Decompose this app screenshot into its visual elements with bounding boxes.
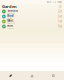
- staticText: Sun 12 May: [46, 0, 61, 4]
- staticText: Basil: [7, 14, 14, 17]
- staticText: Mint: [7, 19, 13, 22]
- staticText: Garden: [2, 4, 17, 9]
- staticText: Tomato: [7, 9, 18, 12]
- button[interactable]: Water: [21, 71, 43, 80]
- button[interactable]: Settings: [43, 71, 64, 80]
- staticText: Trim soon: [7, 27, 14, 29]
- button[interactable]: Profile: [58, 5, 62, 8]
- staticText: 9d: [58, 25, 62, 28]
- staticText: 2d: [58, 10, 62, 13]
- staticText: Needs sun: [7, 22, 15, 24]
- staticText: 5d: [58, 15, 62, 18]
- staticText: Fern: [7, 24, 13, 27]
- button[interactable]: Tomato: [0, 9, 64, 14]
- button[interactable]: Mint: [0, 19, 64, 24]
- staticText: 1d: [58, 20, 62, 23]
- button[interactable]: Fern: [0, 24, 64, 29]
- button[interactable]: Garden: [0, 71, 21, 80]
- staticText: Water today: [7, 12, 15, 14]
- button[interactable]: Basil: [0, 14, 64, 19]
- staticText: Healthy: [7, 17, 12, 19]
